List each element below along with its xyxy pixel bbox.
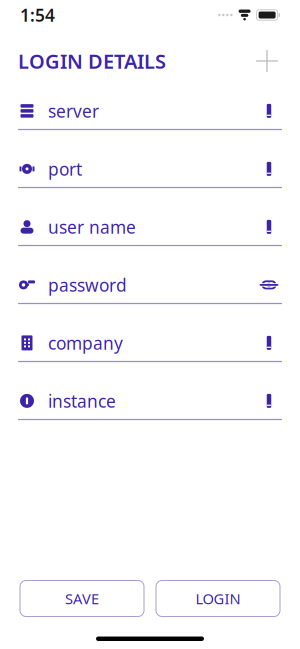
button[interactable]: Show password [256,272,282,298]
button[interactable]: SAVE [20,580,144,616]
staticText: SAVE [65,589,99,608]
button[interactable]: Edit server [256,98,282,124]
staticText: instance [48,389,116,412]
staticText: user name [48,215,136,238]
button[interactable]: Edit company [256,330,282,356]
staticText: password [48,273,127,296]
button[interactable]: Edit user name [256,214,282,240]
button[interactable]: LOGIN [156,580,280,616]
staticText: company [48,331,123,354]
button[interactable]: Edit port [256,156,282,182]
button[interactable]: Edit instance [256,388,282,414]
button[interactable]: Close [252,46,282,76]
staticText: port [48,157,82,180]
staticText: LOGIN DETAILS [18,48,166,74]
staticText: 1:54 [20,3,55,26]
staticText: server [48,99,99,122]
staticText: LOGIN [195,589,240,608]
